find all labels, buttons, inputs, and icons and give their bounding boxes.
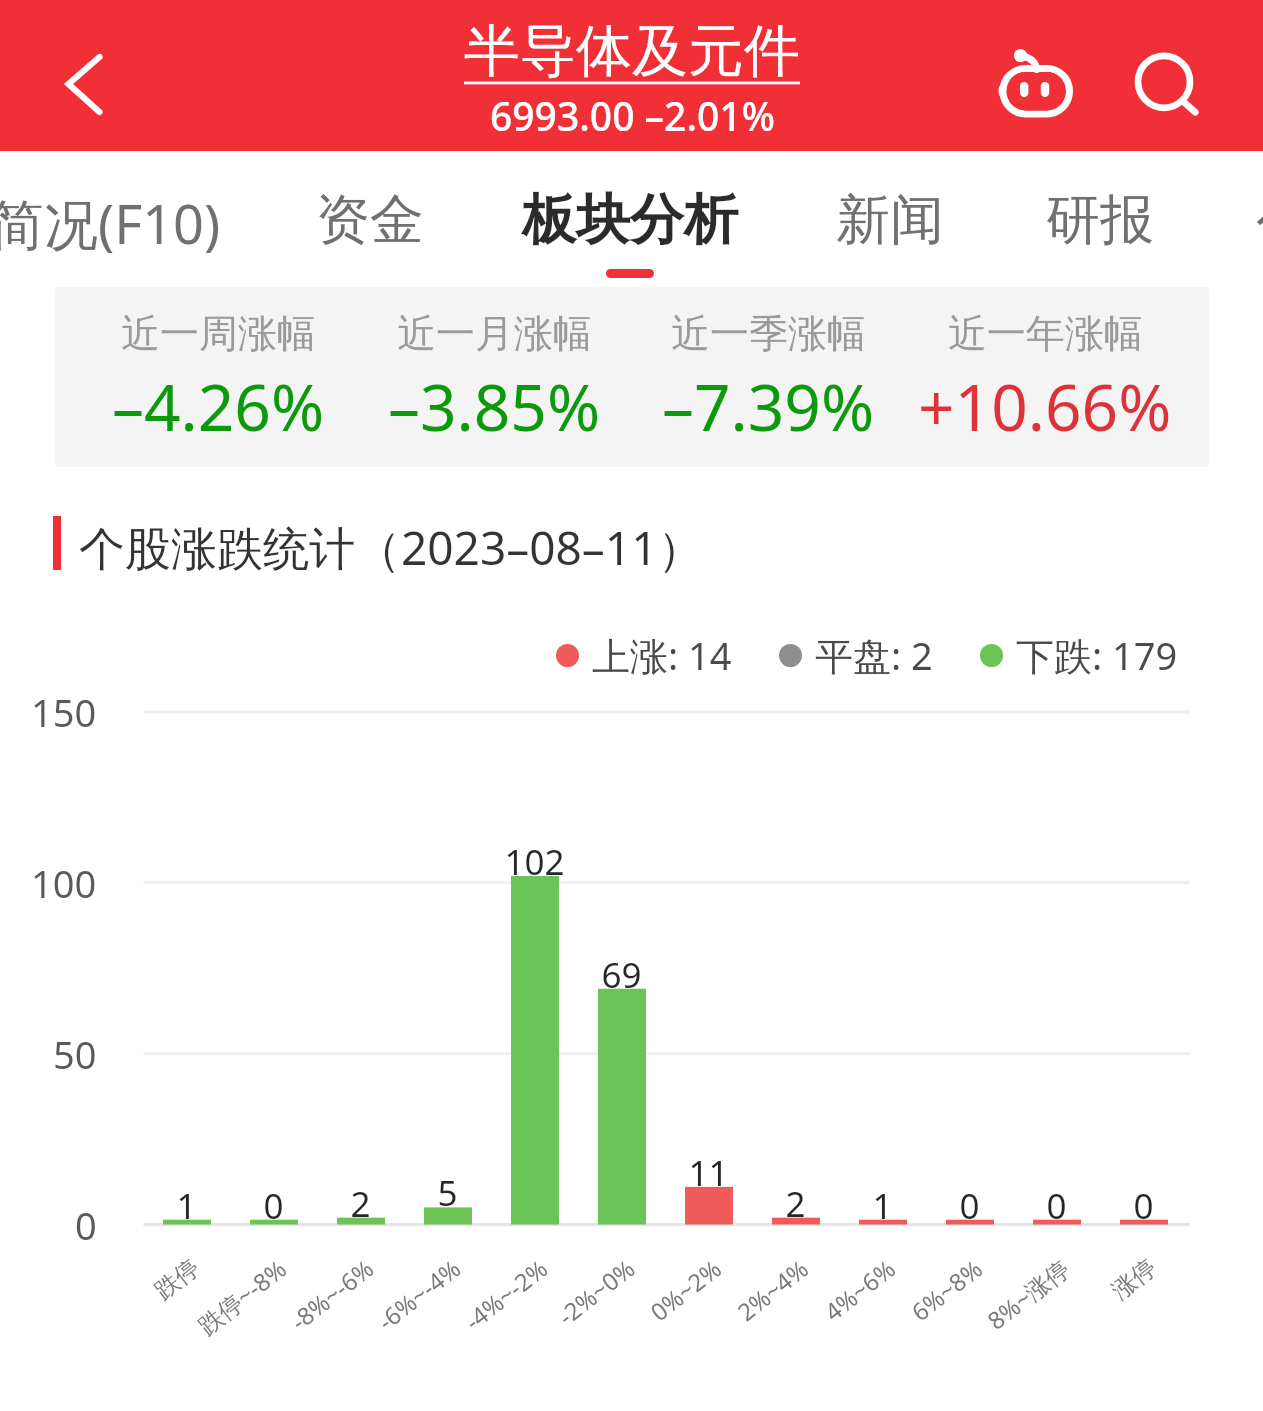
- staticText: 近一季涨幅: [671, 309, 866, 358]
- staticText: 近一年涨幅: [948, 309, 1143, 358]
- staticText: +10.66%: [918, 363, 1172, 450]
- button[interactable]: 资金: [250, 151, 490, 285]
- button[interactable]: Back: [20, 25, 120, 125]
- staticText: 上涨: 14: [592, 629, 732, 681]
- staticText: 6993.00 –2.01%: [490, 89, 775, 142]
- staticText: 简况(F10): [0, 186, 221, 260]
- button[interactable]: 新闻: [770, 151, 1010, 285]
- staticText: –4.26%: [112, 363, 325, 450]
- button[interactable]: 公: [1163, 151, 1263, 285]
- staticText: 板块分析: [522, 186, 738, 254]
- staticText: 公: [1256, 186, 1263, 254]
- staticText: 近一周涨幅: [121, 309, 316, 358]
- staticText: 个股涨跌统计（2023–08–11）: [79, 516, 704, 579]
- staticText: –3.85%: [388, 363, 601, 450]
- staticText: 新闻: [836, 186, 944, 254]
- staticText: 半导体及元件: [464, 16, 800, 87]
- button[interactable]: 板块分析: [510, 151, 750, 285]
- staticText: 近一月涨幅: [397, 309, 592, 358]
- staticText: 资金: [316, 186, 424, 254]
- button[interactable]: AI assistant: [985, 40, 1085, 128]
- staticText: –7.39%: [662, 363, 875, 450]
- staticText: 研报: [1046, 186, 1154, 254]
- button[interactable]: Search: [1120, 40, 1210, 128]
- button[interactable]: 简况(F10): [0, 151, 225, 285]
- staticText: 下跌: 179: [1016, 629, 1178, 681]
- staticText: 平盘: 2: [815, 629, 933, 681]
- button[interactable]: 研报: [980, 151, 1220, 285]
